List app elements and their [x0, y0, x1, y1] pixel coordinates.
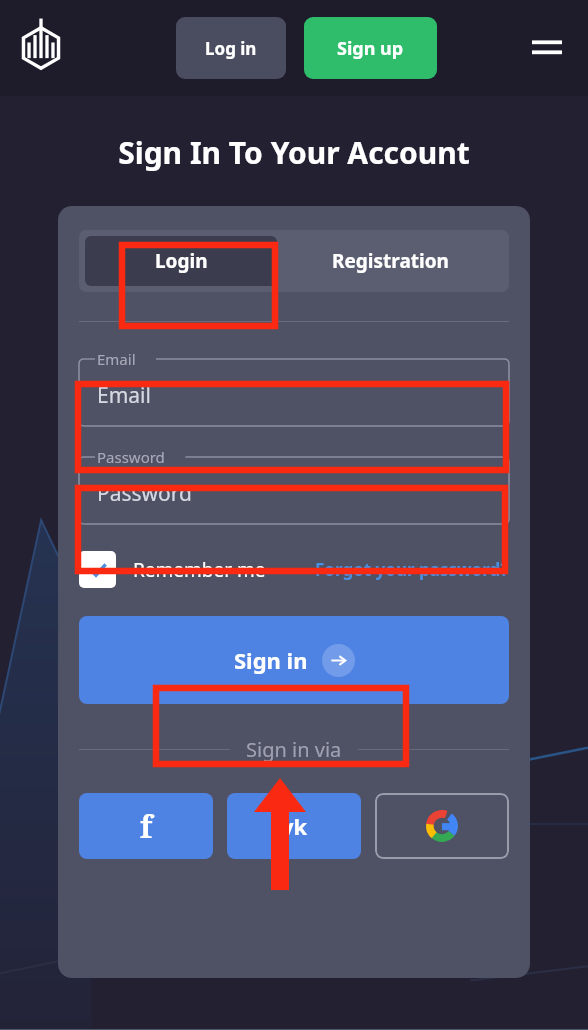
button[interactable]: Log in	[176, 17, 286, 79]
staticText: Sign in via	[246, 736, 342, 763]
button[interactable]: Login	[85, 236, 277, 286]
staticText: Sign In To Your Account	[0, 132, 588, 173]
button[interactable]: Menu	[524, 25, 570, 71]
staticText: Sign in	[234, 645, 308, 675]
button[interactable]: Password	[79, 446, 509, 524]
staticText: Forgot your password?	[315, 558, 509, 581]
staticText: Password	[97, 479, 192, 508]
button[interactable]: Registration	[277, 236, 503, 286]
staticText: Log in	[205, 37, 257, 60]
staticText: vk	[281, 811, 308, 841]
staticText: f	[140, 806, 153, 847]
button[interactable]: Sign in with VK	[227, 793, 361, 859]
button[interactable]: Sign up	[304, 17, 437, 79]
button[interactable]: Email	[79, 348, 509, 426]
staticText: Email	[97, 349, 136, 369]
button[interactable]: Forgot your password?	[315, 558, 509, 581]
button[interactable]: Sign in with Google	[375, 793, 509, 859]
button[interactable]: Sign in with Facebook	[79, 793, 213, 859]
staticText: Registration	[332, 248, 449, 274]
button[interactable]: Sign in	[79, 616, 509, 704]
staticText: Password	[97, 447, 165, 467]
staticText: Email	[97, 381, 151, 410]
button[interactable]: Remember me	[79, 551, 266, 588]
staticText: Sign up	[337, 36, 404, 61]
button[interactable]: Home logo	[16, 23, 66, 73]
staticText: Remember me	[133, 557, 266, 583]
staticText: Login	[155, 248, 208, 274]
